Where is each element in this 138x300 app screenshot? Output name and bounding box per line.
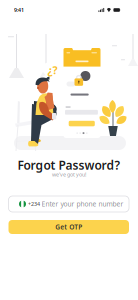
button[interactable]: +234 (8, 196, 129, 212)
staticText: Forgot Password? (17, 157, 120, 173)
staticText: 9:41 (14, 6, 24, 14)
staticText: Get OTP (55, 222, 82, 232)
button[interactable]: Get OTP (8, 220, 129, 234)
staticText: we've got you! (52, 171, 86, 178)
staticText: ¿? (47, 63, 57, 77)
staticText: +234 (28, 200, 40, 208)
staticText: Enter your phone number (42, 200, 124, 208)
